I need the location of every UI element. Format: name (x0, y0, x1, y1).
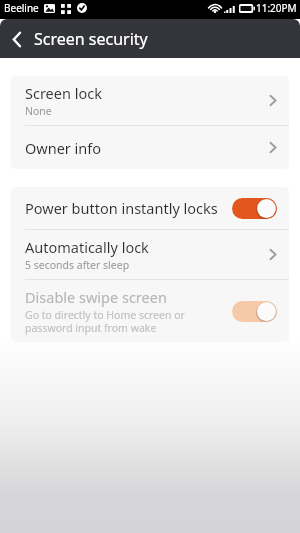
staticText: Owner info (25, 138, 102, 158)
staticText: Disable swipe screen (25, 287, 167, 307)
button[interactable]: Owner info (11, 126, 289, 169)
button[interactable]: Screen lock (11, 76, 289, 125)
staticText: None (25, 104, 52, 118)
staticText: Beeline (4, 1, 39, 15)
button[interactable]: Toggle (232, 301, 277, 322)
staticText: Screen lock (25, 83, 102, 103)
staticText: Automatically lock (25, 237, 149, 257)
button[interactable]: Disable swipe screen (11, 280, 289, 342)
button[interactable]: Back (0, 22, 34, 56)
staticText: Screen security (34, 28, 148, 50)
button[interactable]: Toggle (232, 198, 277, 219)
staticText: Go to directly to Home screen or passwor… (25, 308, 185, 335)
button[interactable]: Power button instantly locks (11, 187, 289, 229)
button[interactable]: Automatically lock (11, 230, 289, 279)
staticText: 5 seconds after sleep (25, 258, 130, 272)
staticText: 11:20PM (256, 1, 297, 15)
staticText: Power button instantly locks (25, 198, 218, 218)
